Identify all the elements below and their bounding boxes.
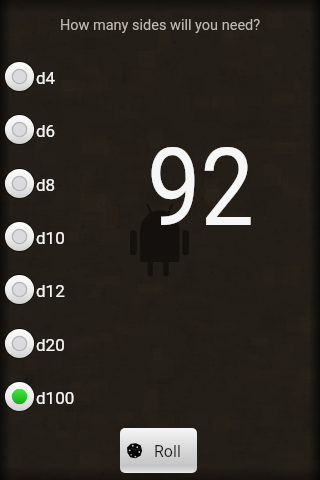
staticText: How many sides will you need? <box>0 17 320 34</box>
button[interactable]: d8 <box>1 159 106 207</box>
staticText: d4 <box>36 68 56 88</box>
staticText: d20 <box>36 335 65 355</box>
button[interactable]: d12 <box>1 265 106 313</box>
staticText: d12 <box>36 281 65 301</box>
button[interactable]: d100 <box>1 372 106 420</box>
button[interactable]: d10 <box>1 212 106 260</box>
staticText: d6 <box>36 121 56 141</box>
staticText: d100 <box>36 388 75 408</box>
button[interactable]: d4 <box>1 52 106 100</box>
staticText: 92 <box>147 126 255 251</box>
staticText: d10 <box>36 228 65 248</box>
staticText: Roll <box>154 442 181 461</box>
button[interactable]: d6 <box>1 105 106 153</box>
button[interactable]: d20 <box>1 319 106 367</box>
button[interactable]: Roll <box>120 428 197 473</box>
staticText: d8 <box>36 175 56 195</box>
